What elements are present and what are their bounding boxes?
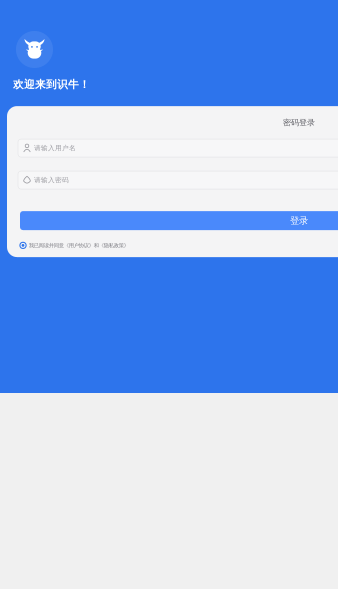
button[interactable]: 请输入密码 xyxy=(18,171,338,189)
staticText: 请输入用户名 xyxy=(34,144,76,152)
button[interactable]: 请输入用户名 xyxy=(18,139,338,157)
staticText: 欢迎来到识牛！ xyxy=(13,78,90,91)
button[interactable]: 密码登录 xyxy=(7,106,338,139)
button[interactable]: 我已阅读并同意《用户协议》和《隐私政策》 xyxy=(7,230,338,257)
staticText: 请输入密码 xyxy=(34,176,69,184)
staticText: 我已阅读并同意《用户协议》和《隐私政策》 xyxy=(29,242,129,249)
staticText: 登录 xyxy=(290,215,308,226)
button[interactable]: 登录 xyxy=(20,211,338,230)
staticText: 密码登录 xyxy=(283,118,315,127)
